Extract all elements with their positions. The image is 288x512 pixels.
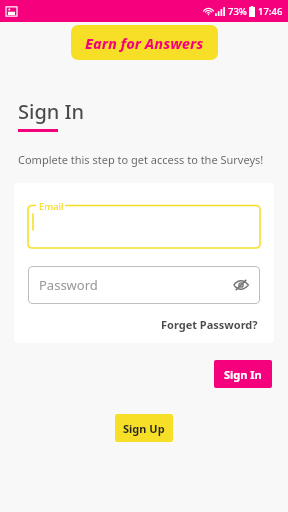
button[interactable]: Sign In (214, 360, 272, 388)
staticText: Complete this step to get access to the … (18, 152, 264, 167)
button[interactable]: Earn for Answers (71, 25, 218, 60)
button[interactable]: Password (28, 266, 260, 304)
staticText: Sign Up (123, 421, 165, 436)
staticText: Password (39, 276, 98, 294)
button[interactable]: Email (28, 200, 260, 248)
staticText: Email (39, 200, 64, 213)
staticText: Sign In (224, 367, 262, 382)
staticText: Forget Password? (161, 317, 258, 332)
button[interactable]: Show password (231, 275, 251, 295)
staticText: Earn for Answers (85, 33, 204, 53)
staticText: 73% (228, 5, 247, 18)
button[interactable]: Forget Password? (159, 314, 260, 335)
staticText: Sign In (18, 98, 85, 125)
button[interactable]: Sign Up (115, 414, 173, 442)
staticText: 17:46 (258, 5, 283, 18)
